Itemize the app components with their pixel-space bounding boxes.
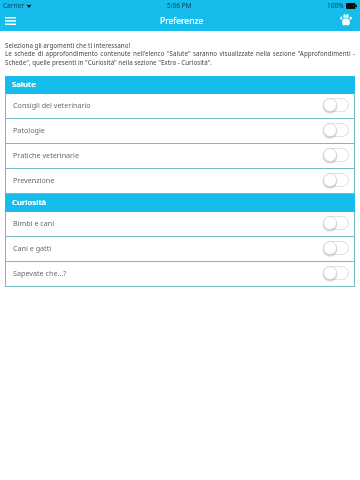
staticText: Bimbi e cani <box>13 218 55 228</box>
staticText: Seleziona gli argomenti che ti interessa… <box>5 41 131 49</box>
button[interactable]: Interruttore <box>323 216 349 230</box>
button[interactable]: Pratiche veterinarie <box>5 144 355 169</box>
button[interactable]: Interruttore <box>323 148 349 162</box>
button[interactable]: Prevenzione <box>5 169 355 194</box>
staticText: Sapevate che...? <box>13 268 67 278</box>
button[interactable]: Sapevate che...? <box>5 262 355 287</box>
button[interactable]: Interruttore <box>323 173 349 187</box>
staticText: Prevenzione <box>13 175 55 185</box>
staticText: 100% <box>327 1 344 10</box>
staticText: Cani e gatti <box>13 243 52 253</box>
staticText: Salute <box>12 79 36 90</box>
staticText: Curiosità <box>12 197 47 208</box>
staticText: Preferenze <box>160 15 204 27</box>
staticText: Consigli del veterinario <box>13 100 91 110</box>
button[interactable]: Interruttore <box>323 241 349 255</box>
staticText: 5:06 PM <box>167 1 192 10</box>
button[interactable]: Menu <box>5 17 16 25</box>
button[interactable]: Interruttore <box>323 123 349 137</box>
button[interactable]: Interruttore <box>323 266 349 280</box>
button[interactable]: Profilo <box>340 14 352 26</box>
staticText: Carrier <box>3 1 25 10</box>
button[interactable]: Cani e gatti <box>5 237 355 262</box>
button[interactable]: Bimbi e cani <box>5 212 355 237</box>
button[interactable]: Patologie <box>5 119 355 144</box>
staticText: Patologie <box>13 125 45 135</box>
staticText: Pratiche veterinarie <box>13 150 79 160</box>
button[interactable]: Interruttore <box>323 98 349 112</box>
staticText: Le schede di approfondimento contenute n… <box>5 49 355 67</box>
button[interactable]: Consigli del veterinario <box>5 94 355 119</box>
